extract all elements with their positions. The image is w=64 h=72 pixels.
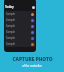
button[interactable] (32, 6, 35, 9)
button[interactable]: Sample (5, 41, 35, 47)
staticText: Sample (6, 36, 16, 40)
staticText: Today (5, 5, 14, 9)
button[interactable]: Sample (5, 17, 35, 23)
button[interactable]: Sample (5, 23, 35, 29)
button[interactable]: Sample (5, 29, 35, 35)
staticText: of the controller (22, 64, 42, 68)
staticText: Sample (6, 42, 16, 46)
staticText: CAPTURE PHOTO (12, 56, 53, 63)
staticText: Sample (6, 30, 16, 34)
button[interactable]: Sample (5, 35, 35, 41)
button[interactable]: Sample (5, 11, 35, 17)
staticText: Sample (6, 12, 16, 16)
staticText: Sample (6, 24, 16, 28)
staticText: Sample (6, 18, 16, 22)
